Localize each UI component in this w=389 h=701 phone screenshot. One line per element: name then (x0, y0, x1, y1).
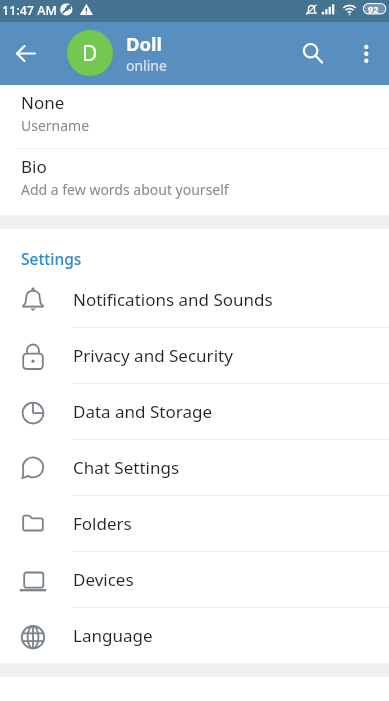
button[interactable]: Folders (0, 496, 389, 551)
staticText: Chat Settings (73, 456, 180, 479)
staticText: 92 (368, 3, 379, 15)
button[interactable]: Privacy and Security (0, 328, 389, 383)
staticText: online (126, 56, 167, 75)
staticText: Devices (73, 568, 134, 591)
staticText: Folders (73, 512, 132, 535)
button[interactable]: Devices (0, 552, 389, 607)
staticText: Username (21, 116, 90, 135)
staticText: Doll (126, 31, 163, 56)
staticText: Language (73, 624, 153, 647)
button[interactable]: Data and Storage (0, 384, 389, 439)
staticText: Privacy and Security (73, 344, 233, 367)
staticText: D (82, 39, 98, 68)
button[interactable]: Language (0, 608, 389, 663)
staticText: None (21, 91, 65, 114)
button[interactable]: Chat Settings (0, 440, 389, 495)
button[interactable]: None (0, 85, 389, 148)
staticText: Notifications and Sounds (73, 288, 273, 311)
button[interactable]: Bio (0, 149, 389, 215)
staticText: 11:47 AM (2, 2, 57, 19)
button[interactable]: Back (6, 33, 46, 73)
staticText: Data and Storage (73, 400, 212, 423)
button[interactable]: Notifications and Sounds (0, 271, 389, 327)
button[interactable]: D (67, 30, 113, 76)
staticText: Bio (21, 155, 47, 178)
button[interactable]: More options (347, 34, 385, 72)
staticText: Settings (21, 248, 82, 269)
staticText: Add a few words about yourself (21, 180, 229, 199)
button[interactable]: Search (291, 31, 331, 71)
